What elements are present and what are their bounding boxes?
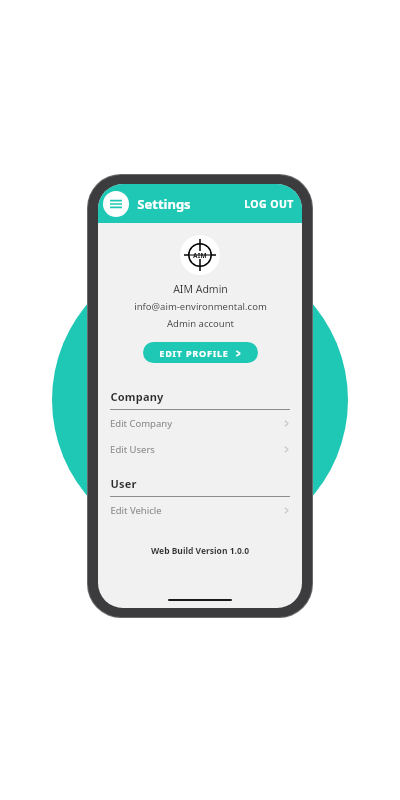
staticText: Admin account bbox=[167, 317, 234, 330]
staticText: AIM bbox=[193, 251, 207, 260]
staticText: EDIT PROFILE bbox=[159, 347, 229, 359]
staticText: Edit Users bbox=[110, 443, 155, 456]
staticText: Web Build Version 1.0.0 bbox=[151, 545, 249, 557]
button[interactable]: Edit Vehicle bbox=[98, 497, 302, 523]
staticText: AIM Admin bbox=[173, 282, 228, 296]
button[interactable]: LOG OUT bbox=[236, 191, 302, 217]
staticText: Company bbox=[110, 389, 164, 404]
staticText: Settings bbox=[137, 195, 191, 213]
staticText: Edit Company bbox=[110, 417, 172, 430]
button[interactable]: EDIT PROFILE bbox=[143, 342, 258, 363]
staticText: LOG OUT bbox=[244, 197, 294, 211]
button[interactable]: Open menu bbox=[103, 191, 129, 217]
button[interactable]: Edit Users bbox=[98, 436, 302, 462]
staticText: Edit Vehicle bbox=[110, 504, 162, 517]
button[interactable]: Edit Company bbox=[98, 410, 302, 436]
staticText: info@aim-environmental.com bbox=[134, 300, 267, 313]
staticText: User bbox=[110, 476, 137, 491]
